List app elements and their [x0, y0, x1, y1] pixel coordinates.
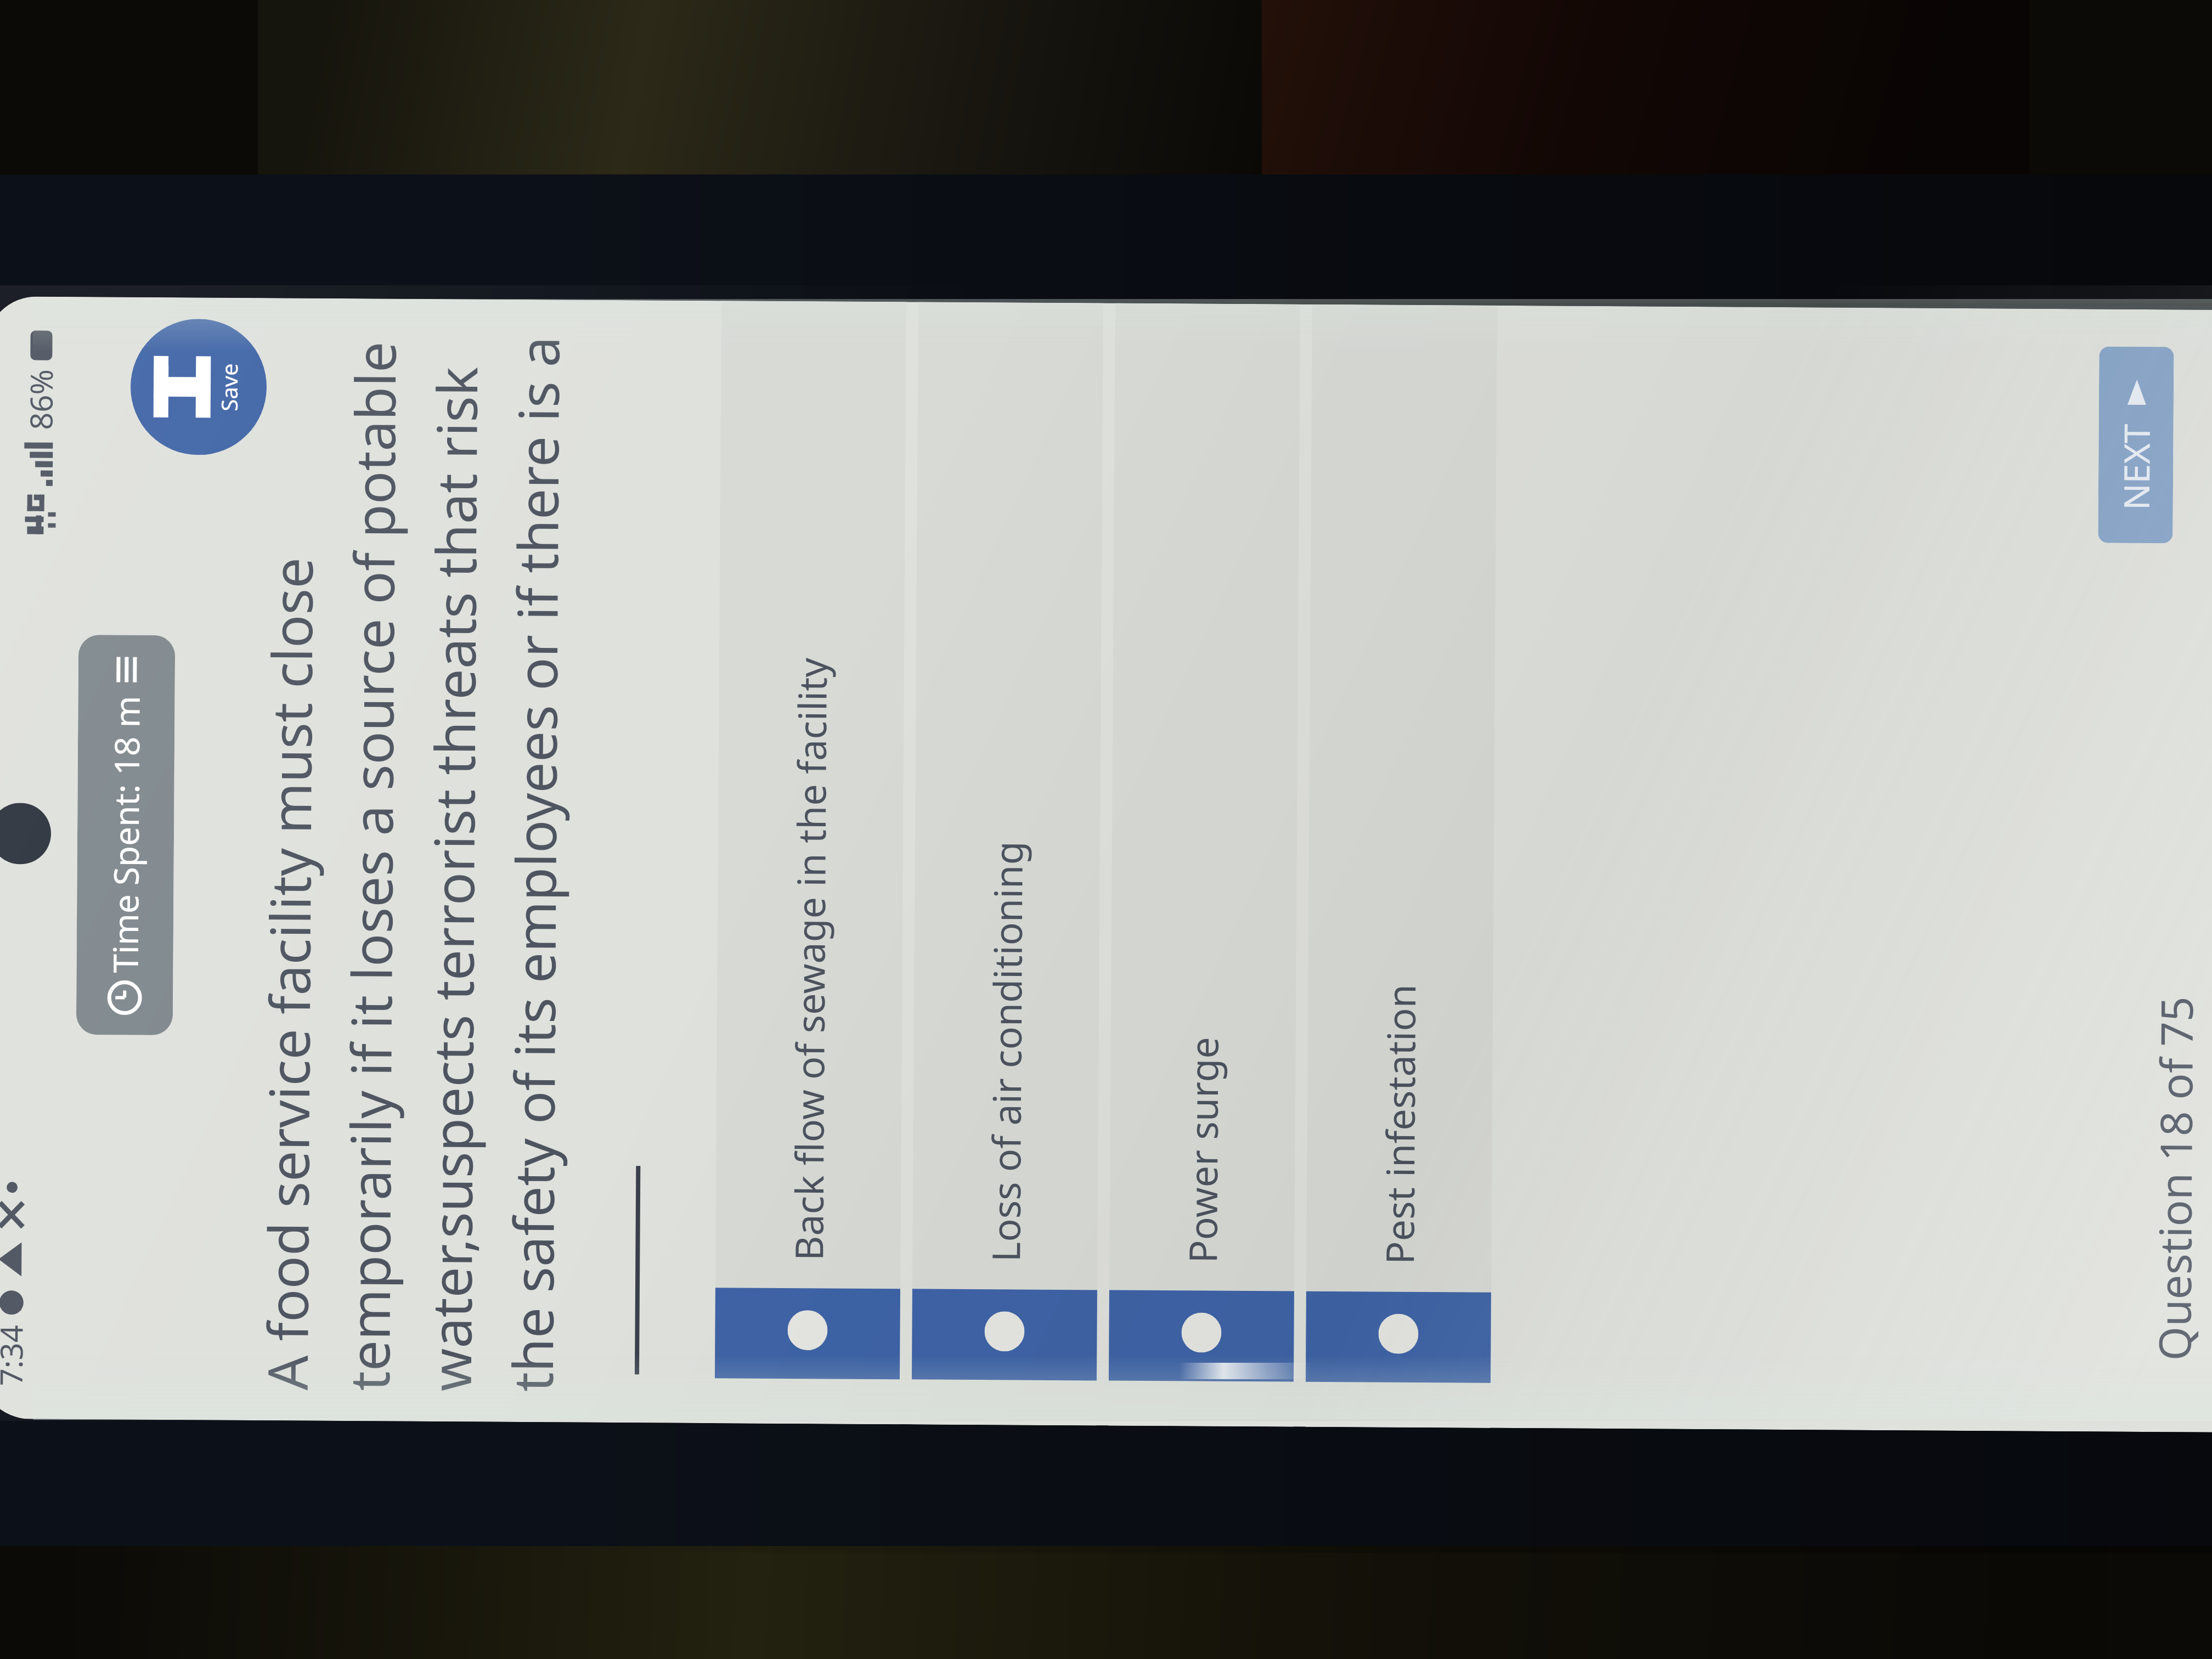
- button[interactable]: Loss of air conditioning: [912, 302, 1103, 1426]
- staticText: Time Spent: 18 m: [102, 695, 150, 973]
- button[interactable]: Save: [130, 319, 267, 455]
- staticText: 7:34: [0, 1324, 32, 1386]
- button[interactable]: Time Spent: 18 m - open menu: [76, 635, 175, 1035]
- staticText: Back flow of sewage in the facility: [782, 657, 838, 1261]
- staticText: Save: [214, 363, 244, 411]
- staticText: Question 18 of 75: [2144, 996, 2206, 1361]
- staticText: Loss of air conditioning: [979, 841, 1034, 1262]
- button[interactable]: Pest infestation: [1305, 304, 1497, 1428]
- staticText: NEXT: [2112, 423, 2160, 510]
- staticText: A food service facility must close tempo…: [249, 334, 575, 1392]
- button[interactable]: NEXT: [2098, 346, 2174, 543]
- staticText: Power surge: [1176, 1036, 1229, 1263]
- button[interactable]: Power surge: [1108, 303, 1300, 1427]
- button[interactable]: Back flow of sewage in the facility: [715, 301, 906, 1424]
- staticText: 86%: [19, 369, 62, 430]
- staticText: Pest infestation: [1373, 984, 1427, 1265]
